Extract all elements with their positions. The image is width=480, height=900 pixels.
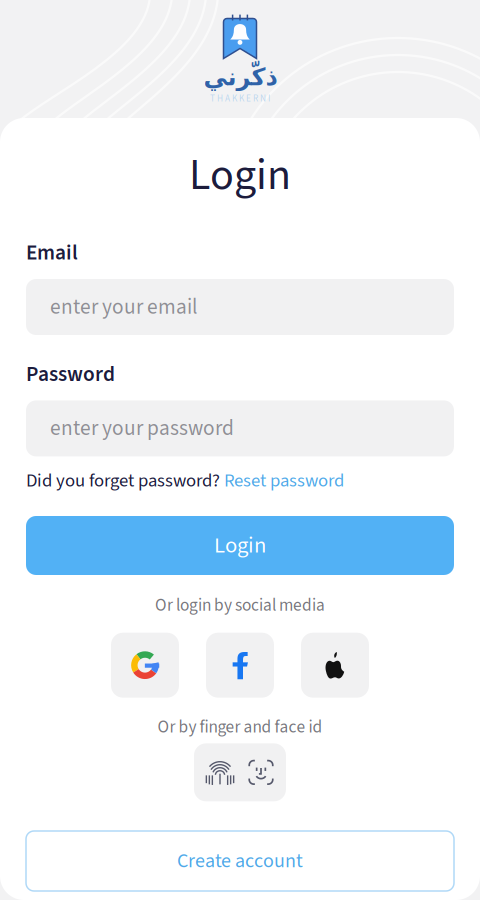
staticText: Password (26, 359, 115, 389)
button[interactable]: Sign in with Touch ID or Face ID (194, 743, 286, 801)
staticText: enter your password (50, 413, 234, 444)
staticText: ذكّرني (203, 63, 277, 91)
button[interactable]: Continue with Facebook (206, 633, 274, 698)
staticText: Or login by social media (155, 593, 325, 618)
staticText: Create account (177, 847, 303, 875)
staticText: Or by finger and face id (157, 715, 322, 739)
button[interactable]: Continue with Google (111, 633, 179, 698)
button[interactable]: Reset password (224, 467, 344, 494)
button[interactable]: Continue with Apple (301, 633, 369, 698)
button[interactable]: Login (26, 516, 454, 575)
staticText: Did you forget password? (26, 467, 220, 494)
staticText: Email (26, 238, 78, 268)
button[interactable]: Create account (26, 831, 454, 891)
staticText: Login (214, 529, 266, 562)
staticText: enter your email (50, 292, 197, 322)
staticText: T H A K K E R N I (210, 92, 270, 105)
staticText: Reset password (224, 467, 344, 494)
staticText: Login (189, 144, 291, 207)
